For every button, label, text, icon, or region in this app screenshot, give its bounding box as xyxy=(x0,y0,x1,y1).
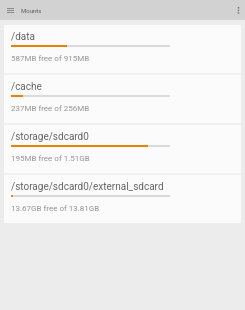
button[interactable]: /storage/sdcard0 xyxy=(4,125,241,173)
button[interactable]: /storage/sdcard0/external_sdcard xyxy=(4,175,241,223)
staticText: /cache xyxy=(11,81,42,93)
button[interactable]: /data xyxy=(4,25,241,73)
staticText: 237MB free of 256MB xyxy=(11,104,90,113)
button[interactable]: More options xyxy=(231,0,245,20)
staticText: Mounts xyxy=(21,7,42,14)
staticText: /storage/sdcard0 xyxy=(11,131,89,143)
staticText: 587MB free of 915MB xyxy=(11,54,90,63)
staticText: 195MB free of 1.51GB xyxy=(11,154,90,163)
button[interactable]: Open navigation drawer xyxy=(0,0,20,20)
button[interactable]: /cache xyxy=(4,75,241,123)
staticText: 13.67GB free of 13.81GB xyxy=(11,204,100,213)
staticText: /data xyxy=(11,31,35,43)
staticText: /storage/sdcard0/external_sdcard xyxy=(11,181,164,193)
